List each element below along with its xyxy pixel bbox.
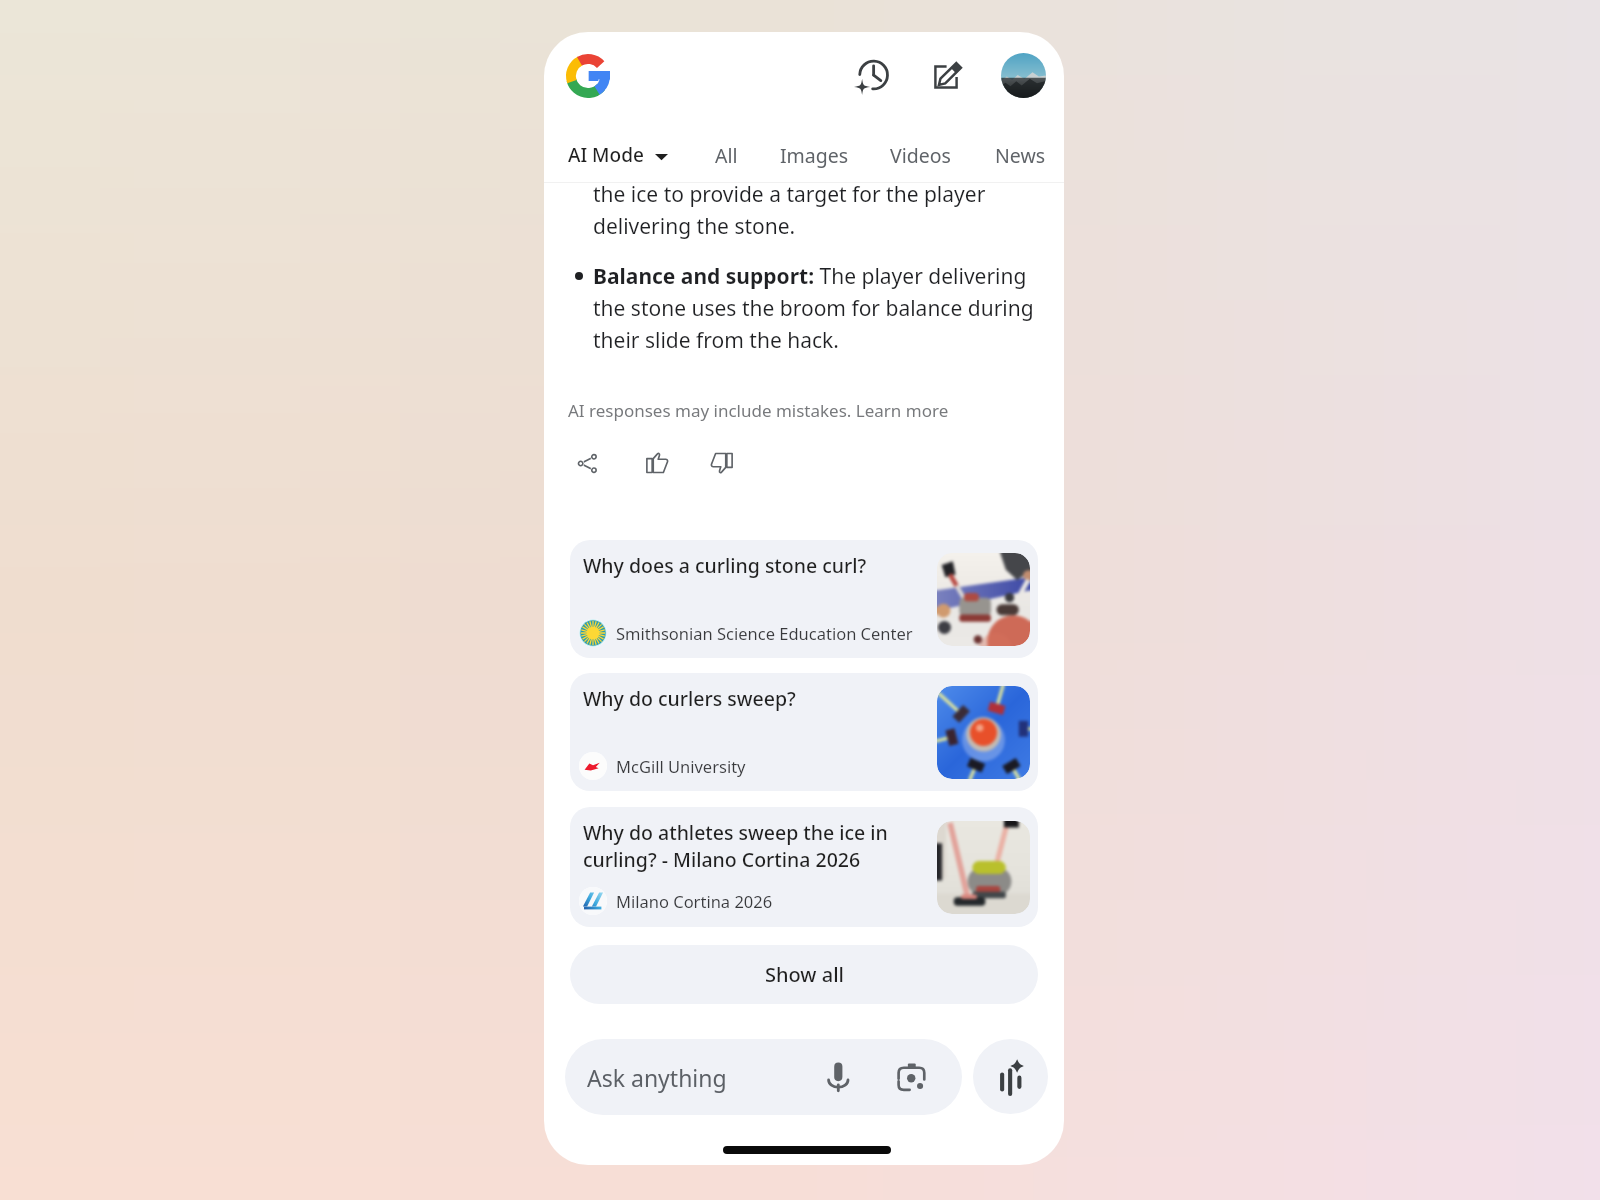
button[interactable]: Account <box>993 45 1053 105</box>
staticText: AI Mode <box>568 142 644 168</box>
button[interactable]: Images <box>772 136 857 175</box>
button[interactable]: Search history <box>840 45 904 109</box>
staticText: Videos <box>890 142 951 169</box>
staticText: Smithsonian Science Education Center <box>616 622 913 644</box>
staticText: All <box>715 142 738 169</box>
staticText: Ask anything <box>587 1062 727 1093</box>
button[interactable]: Voice search <box>814 1053 862 1101</box>
button[interactable]: Google Live <box>973 1039 1048 1114</box>
button[interactable]: Why does a curling stone curl? <box>570 540 1038 658</box>
staticText: AI responses may include mistakes. Learn… <box>568 399 949 422</box>
button[interactable]: Google <box>558 46 618 106</box>
staticText: Why does a curling stone curl? <box>583 552 896 579</box>
staticText: Show all <box>765 961 844 988</box>
staticText: News <box>995 142 1046 169</box>
button[interactable]: Good response <box>629 435 685 491</box>
button[interactable]: Ask anything <box>565 1039 962 1115</box>
button[interactable]: Share <box>559 435 615 491</box>
staticText: the ice to provide a target for the play… <box>593 177 1047 241</box>
button[interactable]: New chat <box>914 45 978 109</box>
button[interactable]: Search with Google Lens <box>886 1053 934 1101</box>
staticText: McGill University <box>616 755 746 777</box>
button[interactable]: Videos <box>882 136 959 175</box>
staticText: Why do athletes sweep the ice in curling… <box>583 819 896 873</box>
staticText: Images <box>780 142 849 169</box>
button[interactable]: Why do curlers sweep? <box>570 673 1038 791</box>
button[interactable]: Bad response <box>694 435 750 491</box>
button[interactable]: News <box>987 136 1054 175</box>
button[interactable]: Show all <box>570 945 1038 1004</box>
staticText: Milano Cortina 2026 <box>616 890 773 912</box>
button[interactable]: AI Mode <box>556 136 680 174</box>
staticText: Balance and support: The player deliveri… <box>593 259 1047 355</box>
button[interactable]: Why do athletes sweep the ice in curling… <box>570 807 1038 927</box>
button[interactable]: All <box>707 136 746 175</box>
staticText: Why do curlers sweep? <box>583 685 896 712</box>
